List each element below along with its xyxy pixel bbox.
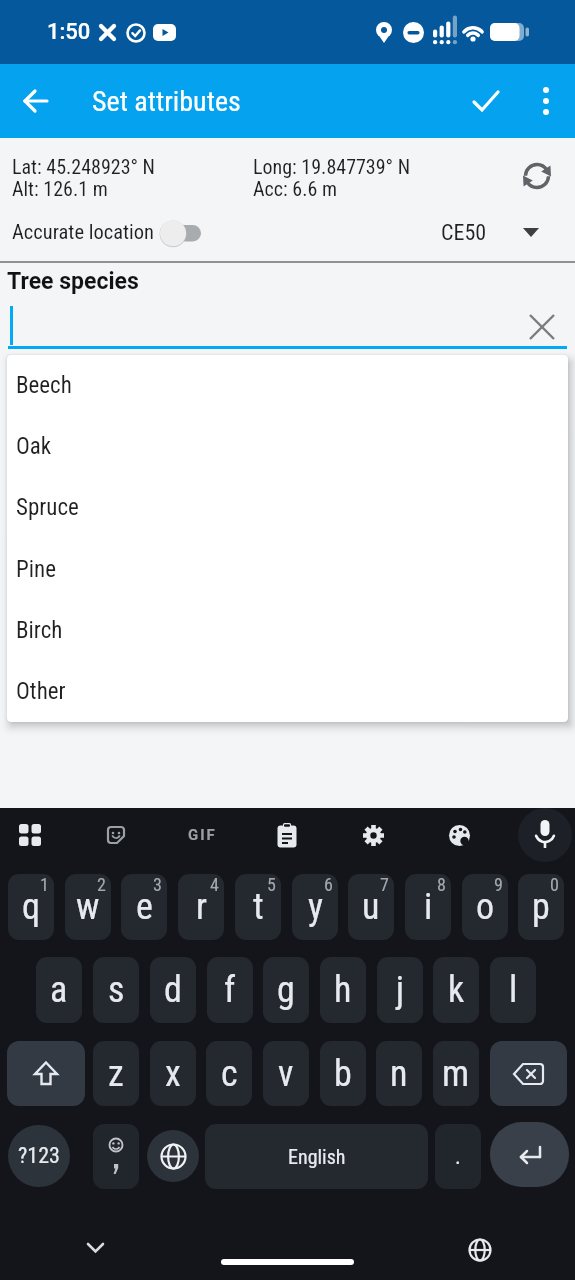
staticText: Set attributes [92, 85, 241, 118]
staticText: 2 [97, 874, 106, 895]
button[interactable]: Oak [7, 416, 568, 477]
button[interactable]: k [433, 957, 479, 1023]
staticText: u [362, 886, 380, 928]
button[interactable]: j [377, 957, 423, 1023]
staticText: 9 [494, 874, 503, 895]
button[interactable]: b [320, 1041, 366, 1106]
button[interactable]: w [65, 874, 111, 940]
staticText: 6 [324, 874, 333, 895]
staticText: 1 [40, 874, 49, 895]
staticText: k [448, 969, 465, 1011]
button[interactable]: CE50 [430, 213, 550, 251]
button[interactable]: o [462, 874, 508, 940]
staticText: t [253, 886, 264, 928]
staticText: Birch [16, 617, 63, 644]
button[interactable] [6, 811, 54, 859]
staticText: m [442, 1053, 470, 1095]
button[interactable]: English [205, 1124, 428, 1189]
staticText: 4 [210, 874, 219, 895]
staticText: p [532, 886, 550, 928]
staticText: 5 [267, 874, 276, 895]
button[interactable]: h [320, 957, 366, 1023]
button[interactable] [458, 1235, 502, 1265]
staticText: Accurate location [12, 220, 154, 244]
staticText: Tree species [7, 268, 139, 295]
staticText: q [22, 886, 41, 928]
button[interactable]: z [93, 1041, 139, 1106]
staticText: Beech [16, 372, 72, 399]
button[interactable]: Pine [7, 539, 568, 600]
button[interactable]: Birch [7, 600, 568, 661]
button[interactable] [522, 77, 570, 125]
button[interactable]: m [433, 1041, 479, 1106]
staticText: j [396, 969, 405, 1011]
staticText: Lat: 45.248923° N [12, 155, 155, 178]
button[interactable]: GIF [178, 811, 226, 859]
button[interactable] [515, 154, 559, 198]
staticText: l [509, 969, 518, 1011]
staticText: b [334, 1053, 352, 1095]
staticText: i [424, 886, 433, 928]
staticText: Alt: 126.1 m [12, 177, 108, 200]
staticText: Acc: 6.6 m [253, 177, 337, 200]
button[interactable]: Other [7, 661, 568, 722]
staticText: English [288, 1145, 346, 1168]
button[interactable] [93, 1124, 139, 1189]
staticText: o [476, 886, 495, 928]
button[interactable]: y [292, 874, 338, 940]
button[interactable]: . [435, 1124, 481, 1189]
button[interactable] [349, 811, 397, 859]
staticText: Spruce [16, 494, 79, 521]
button[interactable]: p [518, 874, 564, 940]
staticText: h [334, 969, 352, 1011]
button[interactable]: g [263, 957, 309, 1023]
button[interactable] [519, 304, 565, 350]
staticText: r [196, 886, 207, 928]
staticText: Pine [16, 556, 56, 583]
staticText: z [108, 1053, 124, 1095]
staticText: e [136, 886, 153, 928]
button[interactable] [75, 1233, 115, 1263]
staticText: f [224, 969, 236, 1011]
button[interactable]: i [405, 874, 451, 940]
button[interactable]: a [36, 957, 82, 1023]
staticText: 7 [380, 874, 389, 895]
staticText: d [164, 969, 182, 1011]
staticText: a [50, 969, 68, 1011]
button[interactable] [155, 215, 211, 253]
button[interactable]: x [150, 1041, 196, 1106]
button[interactable] [263, 811, 311, 859]
button[interactable]: f [207, 957, 253, 1023]
button[interactable] [7, 1041, 85, 1106]
button[interactable]: q [8, 874, 54, 940]
button[interactable]: n [376, 1041, 422, 1106]
button[interactable] [490, 1122, 569, 1187]
button[interactable]: t [235, 874, 281, 940]
button[interactable]: e [121, 874, 167, 940]
button[interactable]: Spruce [7, 477, 568, 538]
staticText: 1:50 [47, 19, 91, 45]
button[interactable]: c [206, 1041, 252, 1106]
button[interactable]: r [178, 874, 224, 940]
staticText: x [165, 1053, 181, 1095]
button[interactable]: u [348, 874, 394, 940]
staticText: s [108, 969, 125, 1011]
button[interactable]: Beech [7, 355, 568, 416]
button[interactable] [435, 811, 483, 859]
staticText: 3 [153, 874, 162, 895]
button[interactable] [92, 811, 140, 859]
staticText: CE50 [441, 220, 487, 246]
button[interactable] [147, 1130, 199, 1182]
staticText: . [455, 1144, 461, 1170]
button[interactable]: l [490, 957, 536, 1023]
staticText: GIF [188, 826, 217, 844]
button[interactable] [518, 808, 572, 862]
button[interactable] [462, 77, 510, 125]
button[interactable] [490, 1041, 567, 1106]
button[interactable]: d [150, 957, 196, 1023]
button[interactable]: ?123 [8, 1125, 70, 1187]
button[interactable] [12, 77, 60, 125]
button[interactable]: v [263, 1041, 309, 1106]
button[interactable]: s [93, 957, 139, 1023]
staticText: 8 [437, 874, 446, 895]
